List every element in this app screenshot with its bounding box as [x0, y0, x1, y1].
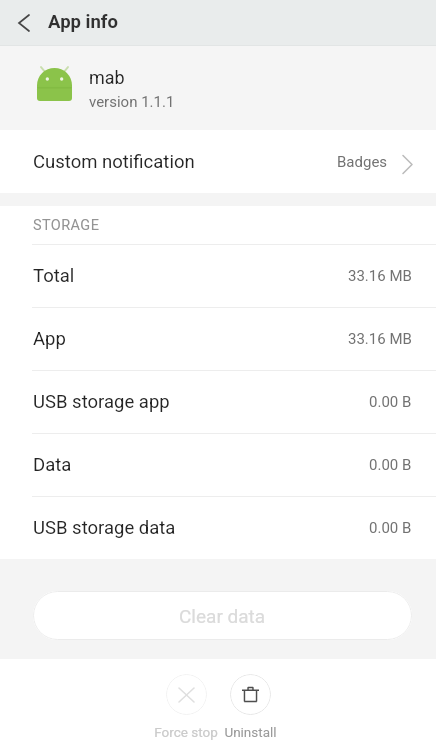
- staticText: USB storage app: [33, 391, 170, 413]
- staticText: 0.00 B: [369, 456, 412, 474]
- button[interactable]: Total: [0, 244, 436, 307]
- staticText: Badges: [337, 153, 388, 171]
- staticText: Force stop: [154, 724, 218, 740]
- button[interactable]: Back: [0, 0, 48, 46]
- staticText: 0.00 B: [369, 519, 412, 537]
- staticText: 33.16 MB: [348, 330, 412, 348]
- staticText: App: [33, 328, 66, 350]
- staticText: STORAGE: [33, 217, 100, 234]
- button[interactable]: App: [0, 307, 436, 370]
- staticText: Data: [33, 454, 72, 476]
- button[interactable]: USB storage app: [0, 370, 436, 433]
- staticText: Uninstall: [224, 724, 277, 740]
- button[interactable]: Uninstall: [230, 674, 271, 715]
- staticText: version 1.1.1: [89, 93, 175, 111]
- staticText: 33.16 MB: [348, 267, 412, 285]
- button[interactable]: Clear data: [33, 591, 412, 640]
- staticText: Clear data: [179, 605, 266, 627]
- staticText: USB storage data: [33, 517, 176, 539]
- staticText: 0.00 B: [369, 393, 412, 411]
- staticText: mab: [89, 67, 125, 88]
- staticText: Custom notification: [33, 151, 195, 173]
- staticText: Total: [33, 265, 75, 287]
- button[interactable]: Data: [0, 433, 436, 496]
- button[interactable]: Force stop: [166, 674, 207, 715]
- button[interactable]: Custom notification: [0, 130, 436, 193]
- staticText: App info: [48, 11, 118, 33]
- button[interactable]: USB storage data: [0, 496, 436, 559]
